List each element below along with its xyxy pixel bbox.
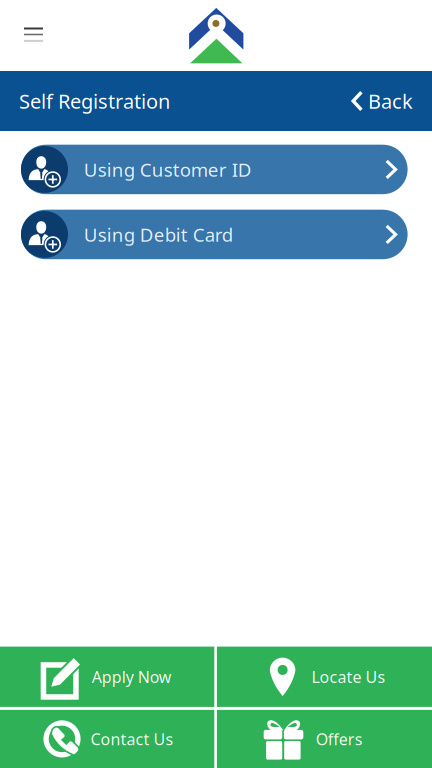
staticText: Using Debit Card <box>84 222 233 247</box>
staticText: Offers <box>316 728 363 749</box>
button[interactable]: Using Debit Card <box>21 210 408 259</box>
button[interactable]: Offers <box>217 710 432 768</box>
button[interactable]: Menu <box>14 17 54 53</box>
button[interactable]: Using Customer ID <box>21 145 408 194</box>
staticText: Contact Us <box>90 728 173 749</box>
staticText: Apply Now <box>92 666 172 687</box>
button[interactable]: Back <box>351 80 413 122</box>
staticText: Back <box>368 88 413 114</box>
staticText: Locate Us <box>311 666 385 687</box>
button[interactable]: Apply Now <box>0 647 214 707</box>
staticText: Self Registration <box>19 88 170 114</box>
staticText: Using Customer ID <box>84 157 252 182</box>
button[interactable]: Contact Us <box>0 710 214 768</box>
button[interactable]: Locate Us <box>217 647 432 707</box>
